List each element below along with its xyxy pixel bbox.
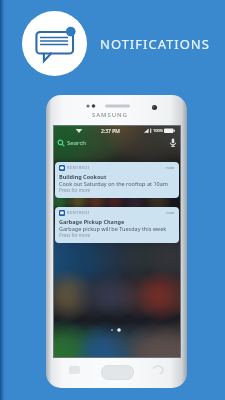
staticText: Press for more <box>59 187 91 193</box>
button[interactable]: Search <box>54 135 180 150</box>
staticText: NOTIFICATIONS <box>100 35 210 53</box>
button[interactable]: RENTREDI <box>55 162 179 198</box>
staticText: Press for more <box>59 232 91 238</box>
staticText: Building Cookout <box>59 173 107 180</box>
button[interactable]: Home <box>101 365 134 380</box>
staticText: Garbage Pickup Change <box>59 218 125 225</box>
staticText: 100% <box>153 128 164 133</box>
other: Voice search <box>170 138 176 147</box>
staticText: RENTREDI <box>67 210 90 216</box>
staticText: SAMSUNG <box>92 111 128 119</box>
staticText: 2:37 PM <box>101 128 120 135</box>
staticText: Cook out Saturday on the rooftop at 10am <box>59 180 168 187</box>
button[interactable]: RENTREDI <box>55 207 179 243</box>
staticText: now <box>166 165 175 171</box>
button[interactable]: Notifications logo <box>22 11 87 76</box>
staticText: now <box>166 210 175 216</box>
staticText: RENTREDI <box>67 165 90 171</box>
staticText: Search <box>67 139 86 147</box>
staticText: Garbage pickup will be Tuesday this week <box>59 225 167 232</box>
